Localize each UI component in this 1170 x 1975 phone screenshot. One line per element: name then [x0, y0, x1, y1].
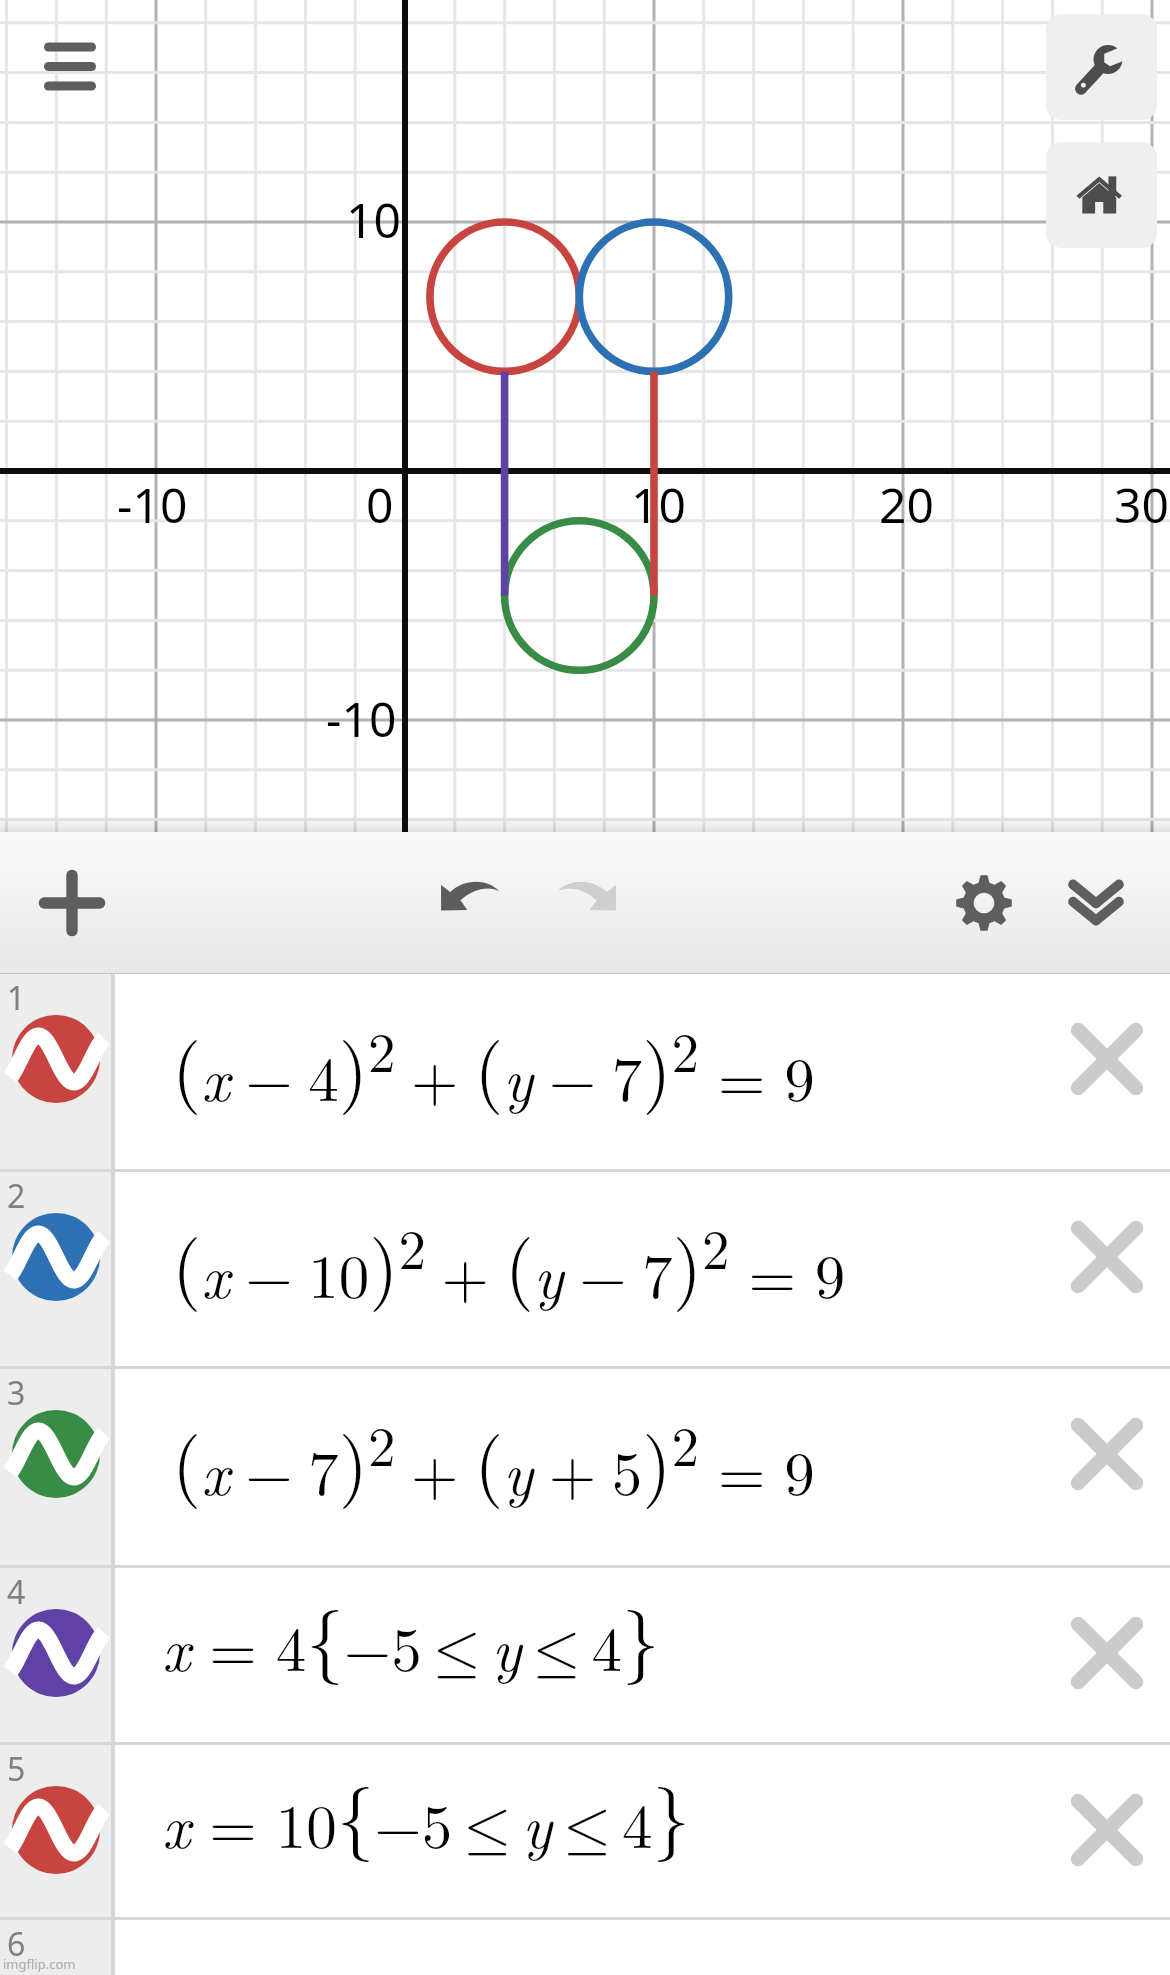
staticText: -10 — [326, 686, 397, 751]
button[interactable]: Undo — [409, 832, 533, 973]
button[interactable]: 5 — [0, 1745, 1170, 1920]
button[interactable]: Graph settings — [926, 832, 1042, 973]
button[interactable]: Delete expression — [1062, 1014, 1152, 1104]
staticText: (x − 7)2 + (y + 5)2 = 9 — [172, 1404, 815, 1513]
button[interactable]: Home — [1046, 142, 1157, 248]
staticText: x = 10{−5 ≤ y ≤ 4} — [162, 1758, 691, 1866]
button[interactable]: 3 — [0, 1369, 1170, 1568]
staticText: 1 — [7, 976, 26, 1020]
button[interactable]: Delete expression — [1062, 1785, 1152, 1875]
staticText: 20 — [879, 472, 934, 537]
staticText: (x − 4)2 + (y − 7)2 = 9 — [172, 1010, 815, 1119]
button[interactable]: Delete expression — [1062, 1212, 1152, 1302]
staticText: 3 — [7, 1371, 26, 1415]
button[interactable]: Redo — [524, 832, 648, 973]
staticText: 10 — [346, 187, 401, 252]
staticText: 4 — [7, 1570, 26, 1614]
button[interactable]: 2 — [0, 1172, 1170, 1369]
button[interactable]: Menu — [30, 26, 110, 106]
staticText: -10 — [117, 472, 188, 537]
staticText: 10 — [631, 472, 686, 537]
button[interactable]: 1 — [0, 974, 1170, 1172]
staticText: x = 4{−5 ≤ y ≤ 4} — [162, 1581, 660, 1689]
staticText: 6 — [7, 1922, 26, 1966]
button[interactable]: Add expression — [14, 832, 130, 973]
staticText: 0 — [366, 472, 394, 537]
button[interactable]: Delete expression — [1062, 1409, 1152, 1499]
button[interactable]: Delete expression — [1062, 1608, 1152, 1698]
button[interactable]: Collapse expressions — [1038, 832, 1154, 973]
staticText: 5 — [7, 1747, 26, 1791]
staticText: 30 — [1114, 472, 1169, 537]
staticText: imgflip.com — [3, 1955, 76, 1973]
button[interactable]: 4 — [0, 1568, 1170, 1745]
staticText: 2 — [7, 1174, 26, 1218]
button[interactable]: Graph tools — [1046, 14, 1157, 120]
staticText: (x − 10)2 + (y − 7)2 = 9 — [172, 1207, 846, 1316]
